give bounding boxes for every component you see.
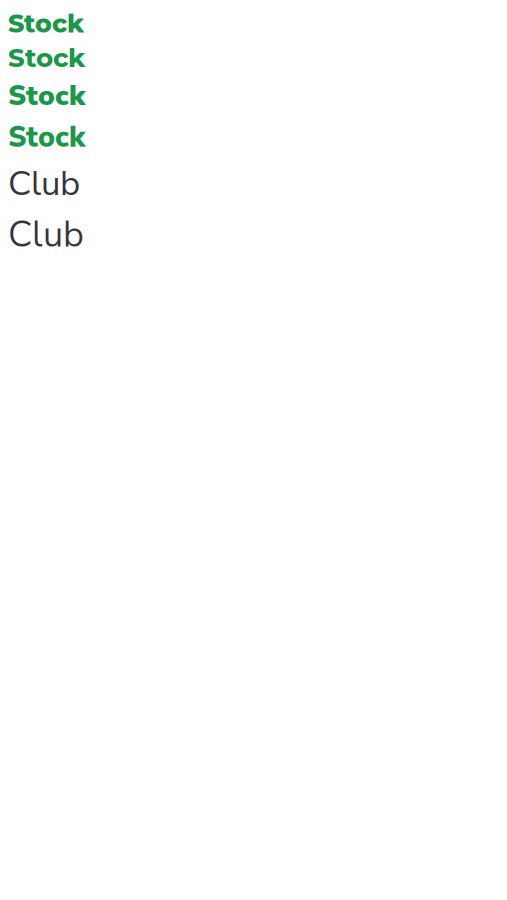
staticText: Stock [8, 42, 85, 74]
staticText: Stock [8, 77, 85, 115]
staticText: Club [8, 160, 80, 207]
staticText: Stock [8, 118, 85, 157]
staticText: Club [8, 210, 84, 259]
staticText: Stock [8, 8, 84, 39]
